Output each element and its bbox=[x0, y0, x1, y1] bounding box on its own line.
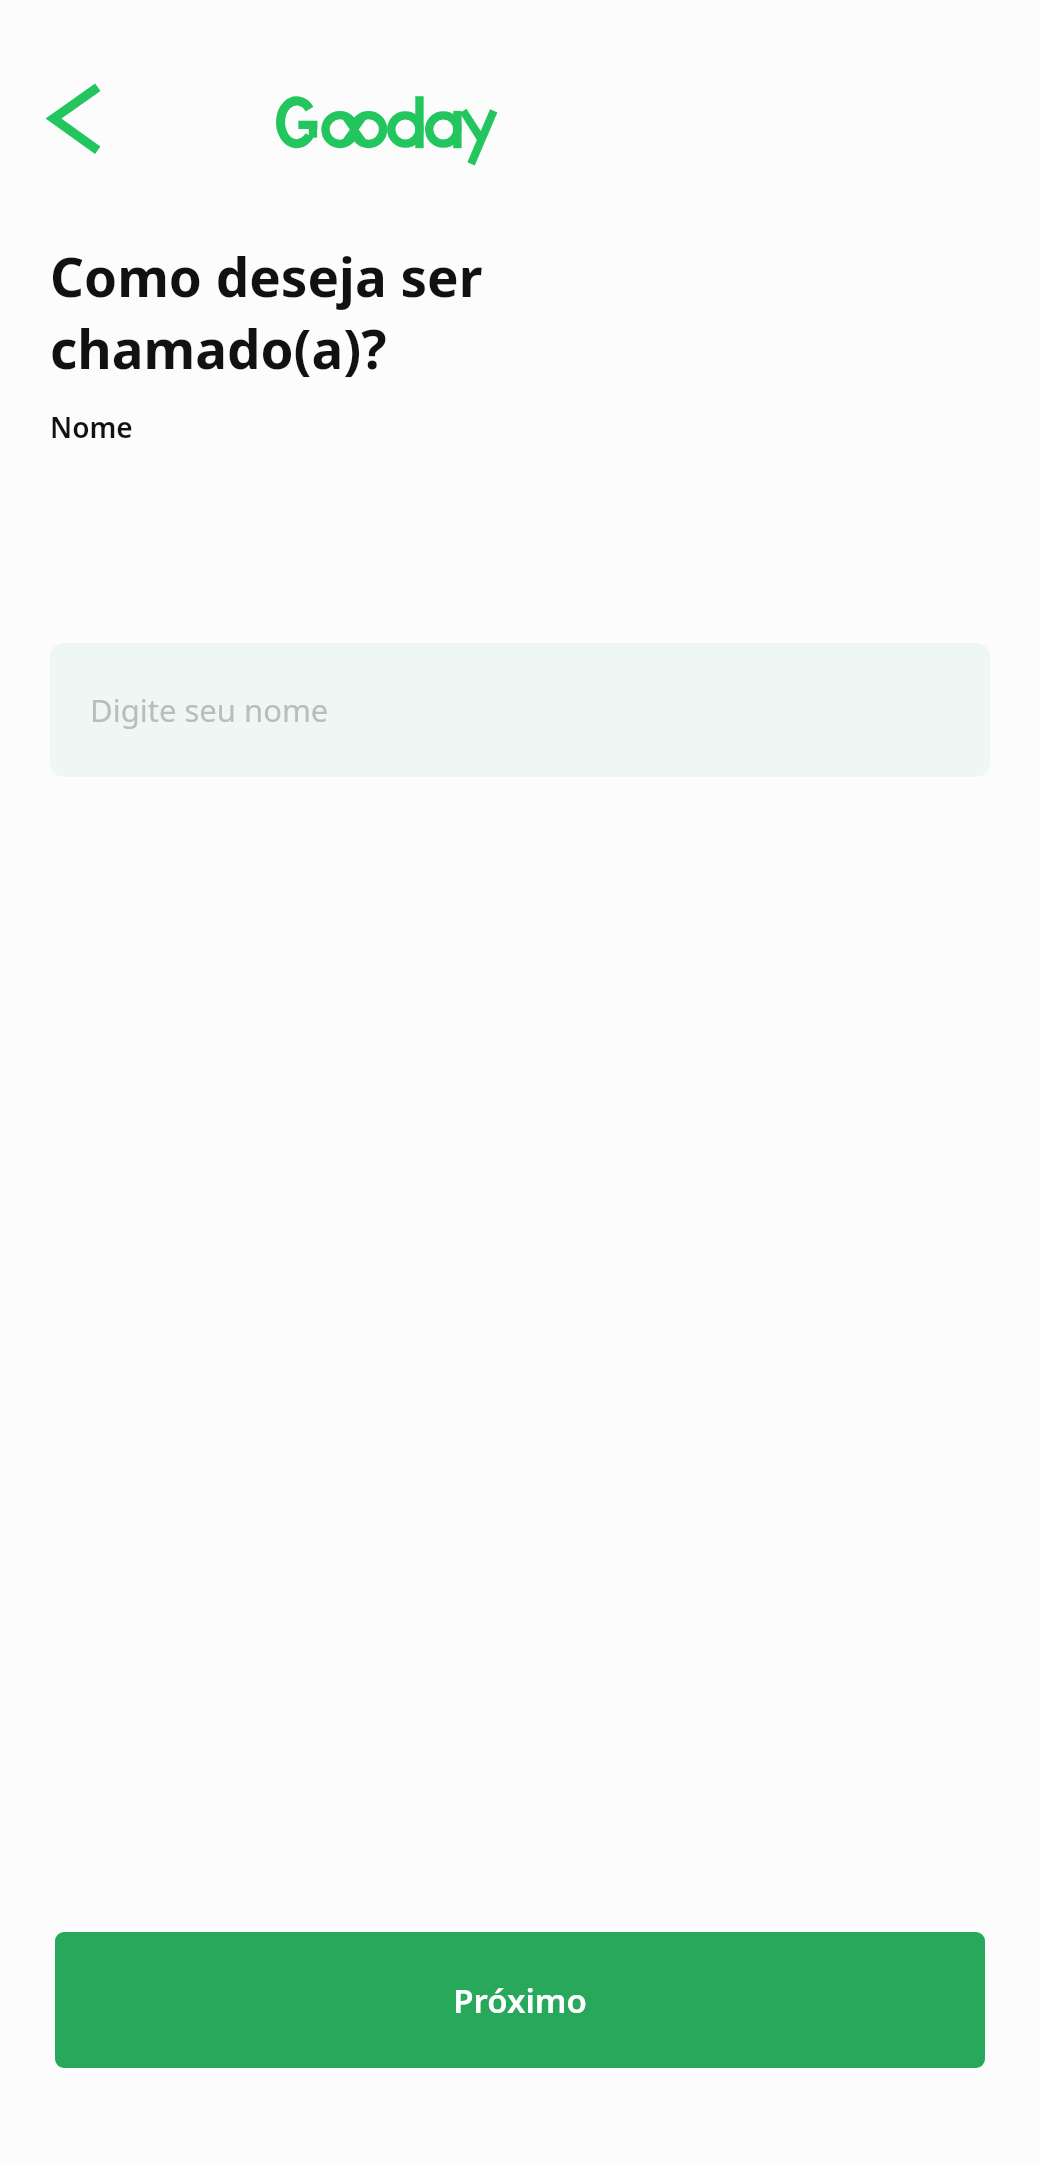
staticText: Digite seu nome bbox=[90, 689, 329, 731]
staticText: Como deseja ser bbox=[50, 240, 483, 312]
staticText: chamado(a)? bbox=[50, 312, 387, 384]
button[interactable]: Próximo bbox=[55, 1932, 985, 2068]
button[interactable]: Digite seu nome bbox=[50, 643, 990, 777]
staticText: Próximo bbox=[453, 1978, 587, 2023]
button[interactable]: Voltar bbox=[28, 68, 128, 168]
staticText: Nome bbox=[50, 408, 133, 446]
